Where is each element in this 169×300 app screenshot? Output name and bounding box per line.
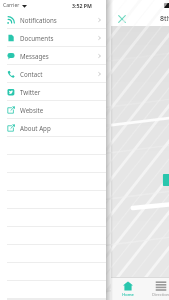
staticText: 8th A xyxy=(160,14,169,24)
staticText: Directions xyxy=(152,292,169,297)
staticText: Documents xyxy=(20,34,54,42)
staticText: Carrier xyxy=(3,2,20,9)
button[interactable]: Twitter xyxy=(0,83,106,101)
button[interactable]: Website xyxy=(0,101,106,119)
staticText: Website xyxy=(20,106,44,114)
button[interactable]: Notifications xyxy=(0,11,106,29)
staticText: Contact xyxy=(20,70,43,78)
button[interactable]: About App xyxy=(0,119,106,137)
button[interactable]: Directions xyxy=(144,277,169,300)
button[interactable]: Home xyxy=(111,277,144,300)
staticText: Messages xyxy=(20,52,49,60)
staticText: 3:52 PM xyxy=(72,2,92,9)
staticText: About App xyxy=(20,124,51,132)
button[interactable]: Messages xyxy=(0,47,106,65)
button[interactable]: Documents xyxy=(0,29,106,47)
staticText: Home xyxy=(122,292,134,297)
staticText: Notifications xyxy=(20,16,57,24)
staticText: Twitter xyxy=(20,88,41,96)
button[interactable]: Close xyxy=(117,14,127,24)
button[interactable]: Contact xyxy=(0,65,106,83)
